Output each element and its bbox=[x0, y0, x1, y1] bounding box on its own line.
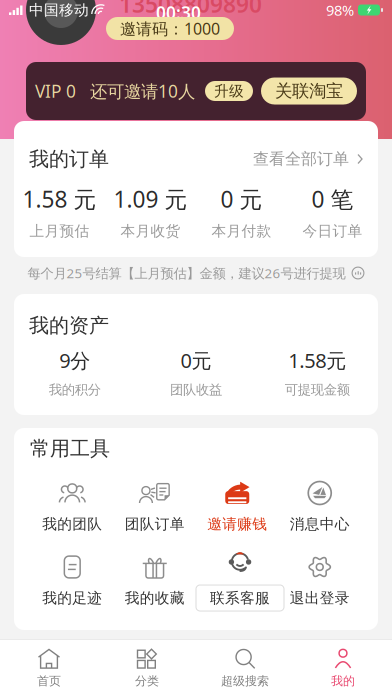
staticText: 首页 bbox=[37, 674, 61, 688]
button[interactable]: 首页 bbox=[0, 648, 98, 688]
staticText: 上月预估 bbox=[29, 222, 89, 240]
staticText: 我的资产 bbox=[29, 313, 109, 338]
button[interactable]: 退出登录 bbox=[278, 554, 361, 606]
button[interactable]: 我的团队 bbox=[31, 480, 113, 532]
button[interactable]: 邀请赚钱 bbox=[196, 480, 278, 532]
staticText: 0元 bbox=[180, 347, 211, 374]
button[interactable]: 我的足迹 bbox=[31, 554, 113, 606]
button[interactable]: 分类 bbox=[98, 648, 196, 688]
staticText: 关联淘宝 bbox=[275, 80, 343, 102]
staticText: 00:30 bbox=[156, 1, 201, 24]
staticText: 1.09 元 bbox=[113, 184, 187, 214]
staticText: 98% bbox=[326, 0, 354, 20]
staticText: 今日订单 bbox=[302, 222, 362, 240]
staticText: 联系客服 bbox=[210, 589, 270, 607]
staticText: 1.58 元 bbox=[22, 184, 96, 214]
button[interactable]: 查看全部订单 bbox=[253, 149, 363, 169]
staticText: 团队订单 bbox=[125, 515, 185, 533]
staticText: 升级 bbox=[214, 82, 244, 100]
staticText: 0 元 bbox=[220, 184, 262, 214]
staticText: 本月收货 bbox=[120, 222, 180, 240]
staticText: 常用工具 bbox=[30, 436, 110, 461]
staticText: 每个月25号结算【上月预估】金额，建议26号进行提现 bbox=[27, 264, 345, 282]
staticText: 查看全部订单 bbox=[253, 149, 349, 169]
button[interactable]: 升级 bbox=[205, 81, 253, 101]
staticText: 我的足迹 bbox=[42, 589, 102, 607]
button[interactable]: 团队订单 bbox=[113, 480, 196, 532]
staticText: 邀请码：1000 bbox=[120, 18, 220, 39]
staticText: 邀请赚钱 bbox=[207, 515, 267, 533]
staticText: 分类 bbox=[135, 674, 159, 688]
button[interactable]: 消息中心 bbox=[278, 480, 361, 532]
staticText: 我的积分 bbox=[49, 382, 101, 398]
staticText: 团队收益 bbox=[170, 382, 222, 398]
staticText: 退出登录 bbox=[290, 589, 350, 607]
staticText: 消息中心 bbox=[290, 515, 350, 533]
staticText: 13508809890 bbox=[119, 0, 262, 19]
staticText: 0 笔 bbox=[311, 184, 353, 214]
button[interactable]: 超级搜索 bbox=[196, 648, 294, 688]
staticText: VIP 0 bbox=[35, 79, 76, 102]
staticText: 可提现金额 bbox=[285, 382, 350, 398]
staticText: 还可邀请10人 bbox=[90, 79, 195, 102]
staticText: 9分 bbox=[59, 347, 90, 374]
button[interactable]: 我的收藏 bbox=[113, 554, 196, 606]
staticText: 我的 bbox=[331, 674, 355, 688]
staticText: 本月付款 bbox=[211, 222, 271, 240]
staticText: 我的团队 bbox=[42, 515, 102, 533]
button[interactable]: 我的 bbox=[294, 648, 392, 688]
staticText: 我的订单 bbox=[29, 147, 109, 171]
staticText: 1.58元 bbox=[288, 347, 346, 374]
staticText: 我的收藏 bbox=[125, 589, 185, 607]
staticText: 中国移动 bbox=[29, 1, 89, 19]
button[interactable]: 关联淘宝 bbox=[261, 77, 357, 104]
button[interactable]: 联系客服 bbox=[196, 549, 278, 611]
staticText: 超级搜索 bbox=[221, 674, 269, 688]
